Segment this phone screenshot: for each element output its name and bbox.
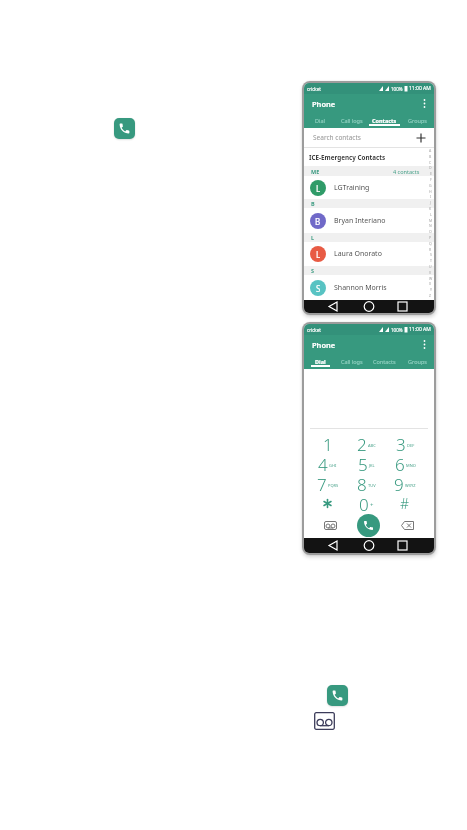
staticText: V bbox=[429, 270, 432, 275]
staticText: 2 bbox=[357, 433, 367, 453]
staticText: 11:00 AM bbox=[409, 326, 431, 333]
button[interactable] bbox=[304, 300, 348, 313]
button[interactable] bbox=[357, 514, 380, 537]
staticText: 11:00 AM bbox=[409, 85, 431, 92]
button[interactable]: Call logs bbox=[336, 354, 368, 369]
staticText: 4 bbox=[318, 453, 328, 473]
staticText: U bbox=[429, 264, 432, 269]
button[interactable]: Dial bbox=[304, 354, 336, 369]
button[interactable]: Dial bbox=[304, 113, 336, 128]
staticText: C bbox=[429, 160, 432, 165]
button[interactable] bbox=[416, 133, 426, 143]
staticText: PQRS bbox=[328, 483, 339, 488]
button[interactable]: Groups bbox=[401, 113, 434, 128]
staticText: Bryan Interiano bbox=[334, 216, 386, 226]
staticText: M bbox=[429, 218, 433, 223]
staticText: Y bbox=[430, 287, 432, 292]
button[interactable]: 8 bbox=[347, 473, 386, 493]
staticText: + bbox=[370, 501, 374, 509]
button[interactable] bbox=[304, 538, 348, 553]
staticText: JKL bbox=[369, 463, 375, 468]
staticText: D bbox=[429, 165, 432, 170]
staticText: N bbox=[429, 223, 432, 228]
button[interactable]: Contacts bbox=[368, 113, 401, 128]
staticText: ME bbox=[311, 168, 320, 175]
button[interactable] bbox=[348, 538, 391, 553]
staticText: 5 bbox=[358, 453, 368, 473]
staticText: 100% bbox=[391, 327, 403, 333]
staticText: Search contacts bbox=[313, 133, 361, 142]
staticText: S bbox=[316, 283, 321, 294]
staticText: Contacts bbox=[373, 358, 396, 365]
staticText: I bbox=[430, 194, 432, 199]
staticText: Dial bbox=[315, 117, 325, 124]
button[interactable]: L bbox=[304, 242, 434, 266]
staticText: 8 bbox=[357, 473, 367, 493]
staticText: 0 bbox=[359, 493, 369, 513]
button[interactable] bbox=[348, 300, 391, 313]
button[interactable]: B bbox=[304, 208, 434, 233]
staticText: J bbox=[430, 200, 431, 205]
button[interactable]: 7 bbox=[308, 473, 347, 493]
button[interactable] bbox=[314, 712, 335, 730]
staticText: K bbox=[429, 206, 432, 211]
staticText: Call logs bbox=[341, 358, 363, 365]
button[interactable]: 9 bbox=[386, 473, 424, 493]
button[interactable] bbox=[391, 538, 434, 553]
staticText: L bbox=[311, 234, 315, 241]
staticText: Call logs bbox=[341, 117, 363, 124]
button[interactable]: ICE-Emergency Contacts bbox=[304, 148, 434, 166]
button[interactable] bbox=[324, 521, 337, 530]
staticText: 1 bbox=[323, 433, 333, 453]
button[interactable]: Call logs bbox=[336, 113, 368, 128]
staticText: L bbox=[316, 249, 321, 260]
button[interactable]: 3 bbox=[386, 433, 424, 453]
staticText: B bbox=[311, 200, 315, 207]
staticText: Contacts bbox=[372, 117, 397, 124]
staticText: L bbox=[430, 212, 432, 217]
button[interactable] bbox=[114, 118, 135, 139]
staticText: S bbox=[430, 252, 432, 257]
staticText: O bbox=[429, 229, 432, 234]
button[interactable]: 2 bbox=[347, 433, 386, 453]
staticText: WXYZ bbox=[405, 483, 416, 488]
button[interactable] bbox=[391, 300, 434, 313]
staticText: ICE-Emergency Contacts bbox=[309, 153, 386, 162]
button[interactable]: 0 bbox=[347, 493, 386, 513]
staticText: 100% bbox=[391, 86, 403, 92]
staticText: 9 bbox=[394, 473, 404, 493]
button[interactable] bbox=[401, 521, 414, 530]
button[interactable]: S bbox=[304, 275, 434, 300]
staticText: E bbox=[430, 171, 432, 176]
staticText: cricket bbox=[307, 86, 321, 92]
staticText: 3 bbox=[396, 433, 406, 453]
staticText: B bbox=[315, 216, 321, 227]
staticText: P bbox=[429, 235, 432, 240]
button[interactable] bbox=[327, 685, 348, 706]
staticText: Shannon Morris bbox=[334, 283, 387, 293]
staticText: S bbox=[311, 267, 315, 274]
staticText: ABC bbox=[368, 443, 376, 448]
staticText: G bbox=[429, 183, 432, 188]
button[interactable]: Groups bbox=[401, 354, 434, 369]
staticText: Groups bbox=[408, 358, 427, 365]
button[interactable] bbox=[423, 98, 426, 109]
staticText: DEF bbox=[407, 443, 415, 448]
button[interactable]: 1 bbox=[308, 433, 347, 453]
button[interactable]: Search contacts bbox=[304, 128, 434, 147]
staticText: Groups bbox=[408, 117, 427, 124]
staticText: R bbox=[429, 247, 432, 252]
button[interactable]: Contacts bbox=[368, 354, 401, 369]
staticText: W bbox=[429, 276, 433, 281]
staticText: LGTraining bbox=[334, 183, 370, 193]
button[interactable]: 6 bbox=[386, 453, 424, 473]
staticText: # bbox=[400, 494, 410, 513]
button[interactable]: 5 bbox=[347, 453, 386, 473]
button[interactable]: # bbox=[386, 493, 424, 513]
staticText: A bbox=[429, 148, 432, 153]
staticText: T bbox=[430, 258, 432, 263]
button[interactable] bbox=[423, 339, 426, 350]
button[interactable]: 4 bbox=[308, 453, 347, 473]
button[interactable]: L bbox=[304, 176, 434, 199]
button[interactable] bbox=[308, 493, 347, 513]
